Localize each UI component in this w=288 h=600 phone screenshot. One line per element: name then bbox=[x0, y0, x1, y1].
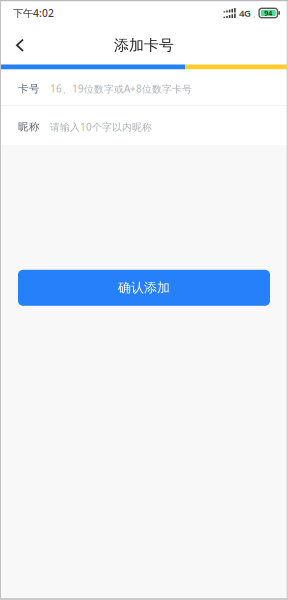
button[interactable]: 确认添加 bbox=[18, 270, 270, 306]
button[interactable]: Back bbox=[8, 29, 32, 61]
staticText: 下午4:02 bbox=[13, 6, 54, 20]
staticText: 添加卡号 bbox=[114, 36, 174, 55]
staticText: 16、19位数字或A+8位数字卡号 bbox=[50, 82, 192, 95]
staticText: 4G bbox=[239, 6, 251, 20]
staticText: 卡号 bbox=[18, 82, 40, 95]
staticText: 94 bbox=[264, 8, 272, 18]
staticText: 昵称 bbox=[18, 120, 40, 133]
staticText: 确认添加 bbox=[118, 280, 170, 296]
staticText: 请输入10个字以内昵称 bbox=[50, 120, 152, 133]
